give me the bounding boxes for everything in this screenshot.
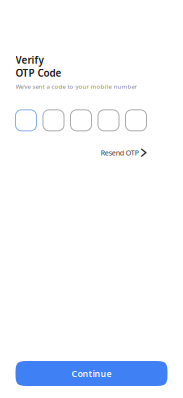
button[interactable]: Continue: [15, 361, 167, 386]
staticText: Resend OTP: [101, 148, 139, 157]
button[interactable]: Resend OTP: [101, 148, 146, 157]
button[interactable]: OTP digit 1, active: [15, 110, 36, 131]
staticText: Continue: [71, 367, 111, 379]
staticText: OTP Code: [15, 66, 61, 79]
button[interactable]: OTP digit: [70, 110, 91, 131]
button[interactable]: OTP digit: [43, 110, 64, 131]
staticText: We've sent a code to your mobile number: [15, 82, 136, 90]
button[interactable]: OTP digit: [98, 110, 119, 131]
staticText: Verify: [15, 53, 43, 67]
button[interactable]: OTP digit: [125, 110, 146, 131]
